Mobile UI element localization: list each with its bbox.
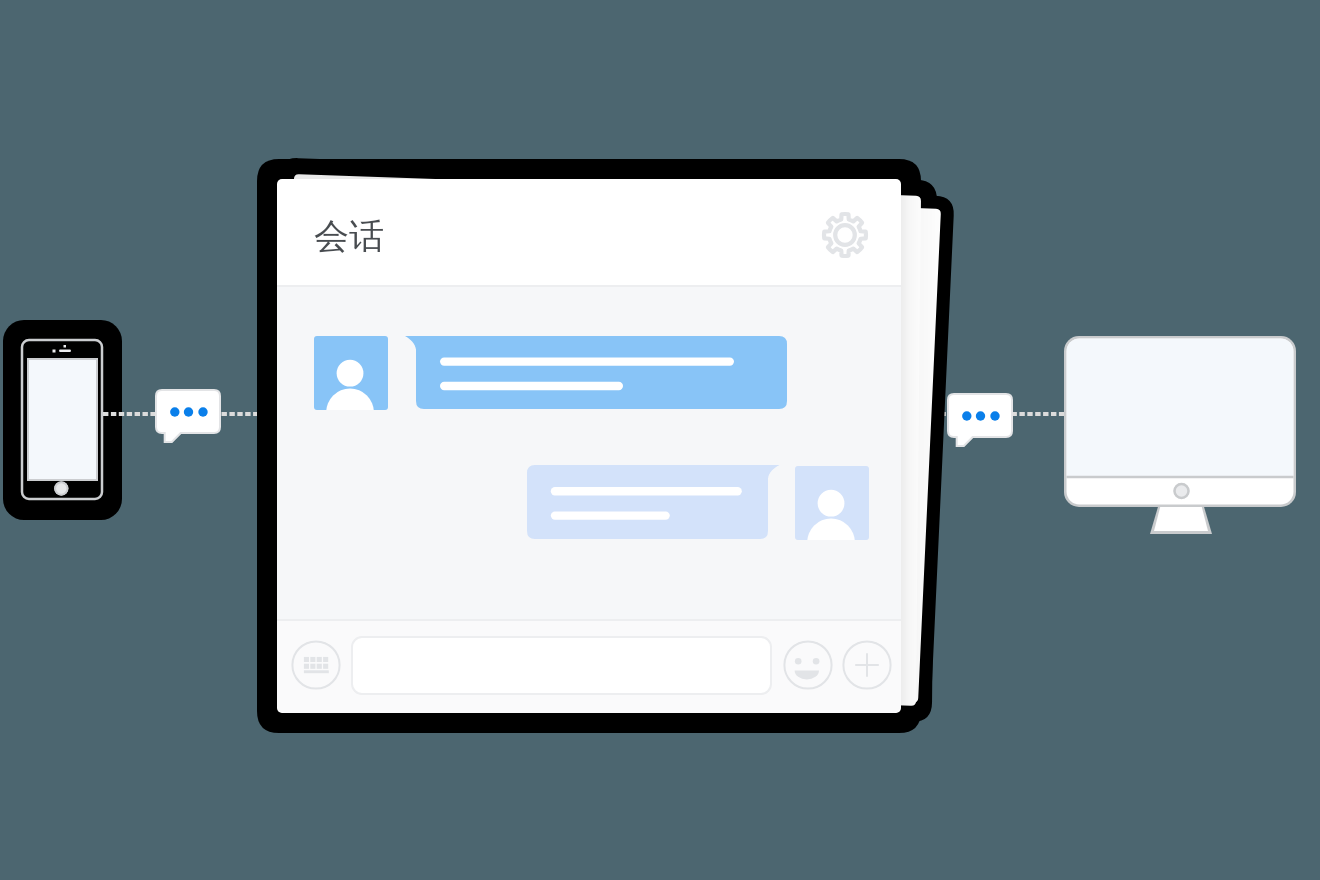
button[interactable]: Settings <box>821 211 869 259</box>
button[interactable]: Message input <box>352 637 771 694</box>
button[interactable]: Emoji <box>784 641 832 689</box>
staticText: 会话 <box>314 214 384 258</box>
button[interactable]: Add attachment <box>843 641 891 689</box>
button[interactable]: Keyboard <box>292 641 340 689</box>
